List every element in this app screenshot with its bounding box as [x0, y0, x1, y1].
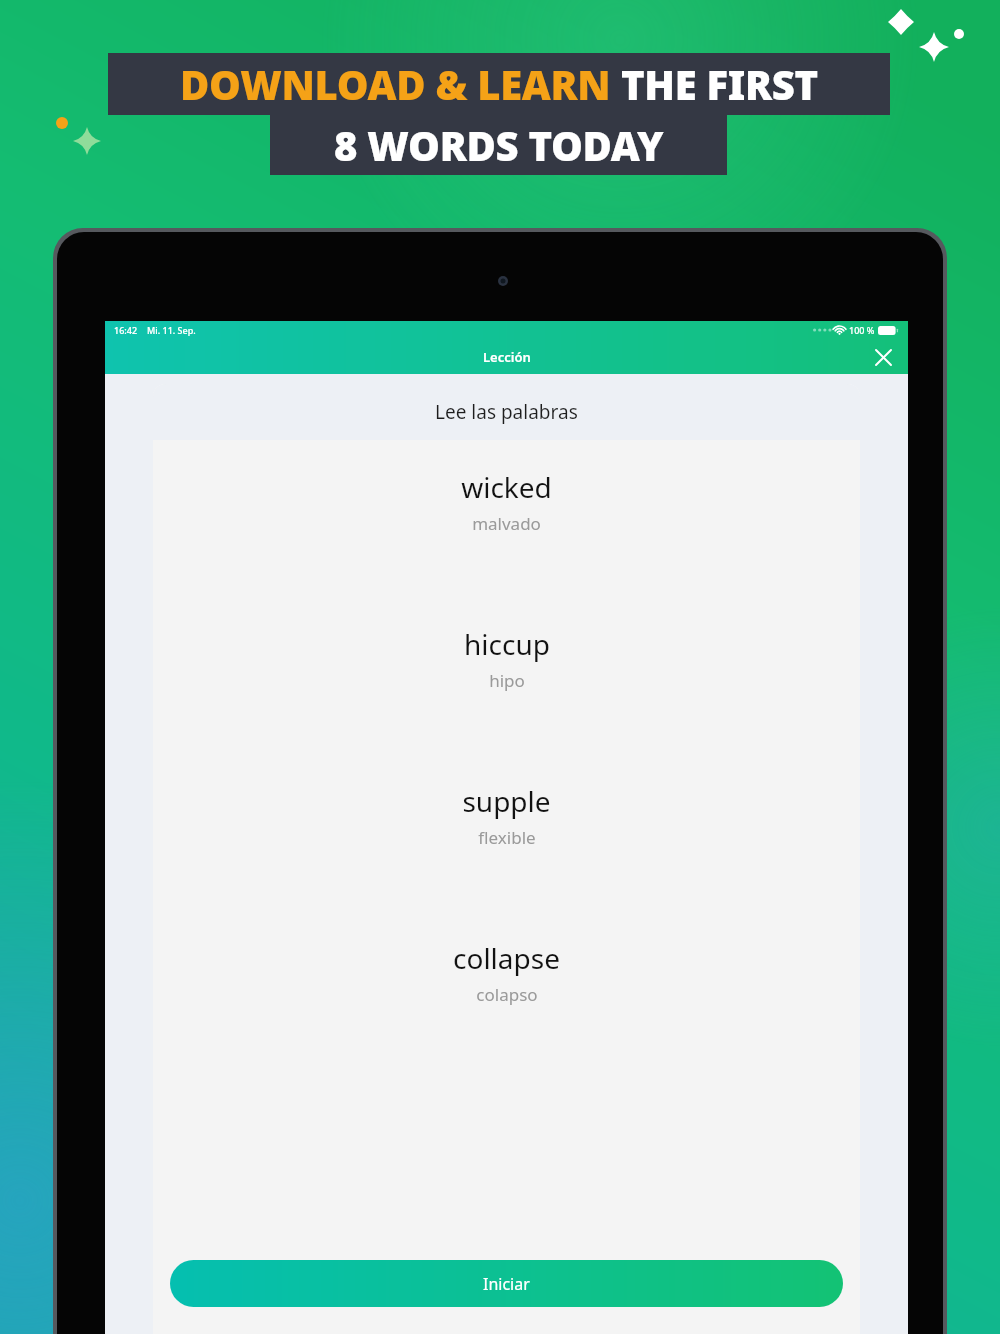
staticText: flexible: [478, 826, 536, 849]
button[interactable]: hiccup: [153, 625, 860, 782]
button[interactable]: Iniciar: [170, 1260, 843, 1307]
button[interactable]: Close: [870, 344, 896, 370]
button[interactable]: collapse: [153, 939, 860, 1096]
staticText: wicked: [461, 468, 552, 506]
staticText: DOWNLOAD & LEARN: [180, 57, 621, 111]
staticText: hipo: [489, 669, 525, 692]
button[interactable]: wicked: [153, 468, 860, 625]
button[interactable]: supple: [153, 782, 860, 939]
staticText: colapso: [476, 983, 538, 1006]
staticText: THE FIRST: [621, 57, 818, 111]
staticText: Lección: [483, 348, 531, 366]
staticText: Mi. 11. Sep.: [147, 324, 196, 336]
staticText: collapse: [453, 939, 560, 977]
staticText: 16:42: [114, 324, 138, 336]
staticText: 8 WORDS TODAY: [334, 118, 664, 172]
staticText: hiccup: [464, 625, 550, 663]
staticText: Lee las palabras: [435, 399, 578, 425]
staticText: malvado: [472, 512, 541, 535]
staticText: Iniciar: [483, 1273, 530, 1295]
staticText: 100 %: [849, 324, 875, 336]
staticText: supple: [462, 782, 551, 820]
